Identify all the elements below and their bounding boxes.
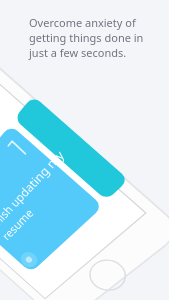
staticText: Overcome anxiety of getting things done … (29, 15, 144, 60)
